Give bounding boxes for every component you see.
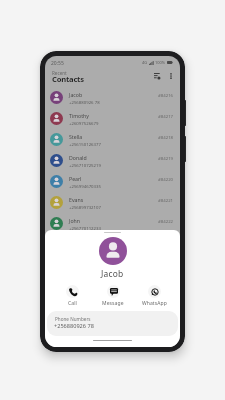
staticText: +256880926 78 [69,99,100,105]
button[interactable]: Jacob [45,87,180,108]
button[interactable]: Evans [45,192,180,213]
staticText: #84218 [158,134,174,140]
button[interactable]: Donald [45,150,180,171]
staticText: Message [102,300,124,307]
staticText: #84221 [158,197,174,203]
staticText: 4G [142,60,148,65]
staticText: Donald [69,154,87,161]
staticText: Call [68,300,77,307]
staticText: Jacob [69,91,83,98]
staticText: +256770112233 [69,225,101,231]
staticText: Timothy [69,112,89,119]
staticText: Stella [69,133,83,140]
staticText: Phone Numbers [55,316,91,322]
staticText: John [69,217,80,224]
button[interactable]: Manage contacts [151,70,163,82]
button[interactable]: Pearl [45,171,180,192]
button[interactable]: Stella [45,129,180,150]
staticText: Evans [69,196,84,203]
button[interactable]: WhatsApp [136,283,172,305]
staticText: +256899732107 [69,204,101,210]
staticText: #84219 [158,155,174,161]
staticText: #84216 [158,92,174,98]
staticText: +26097526679 [69,120,99,126]
staticText: Recent [52,70,67,76]
staticText: Contacts [52,74,84,84]
button[interactable]: John [45,213,180,234]
button[interactable]: Timothy [45,108,180,129]
staticText: +256994670335 [69,183,101,189]
staticText: 100% [155,60,166,65]
button[interactable]: Call [54,283,90,305]
button[interactable]: Phone Numbers [47,311,178,336]
button[interactable]: More options [165,70,177,82]
staticText: +256880926 78 [54,322,94,330]
staticText: Pearl [69,175,82,182]
staticText: #84220 [158,176,174,182]
staticText: #84217 [158,113,174,119]
staticText: +256150126377 [69,141,101,147]
staticText: 20:55 [51,60,64,67]
staticText: #84222 [158,218,174,224]
button[interactable]: Message [95,283,131,305]
staticText: +256710725219 [69,162,101,168]
staticText: WhatsApp [142,300,167,307]
staticText: Jacob [101,268,124,279]
